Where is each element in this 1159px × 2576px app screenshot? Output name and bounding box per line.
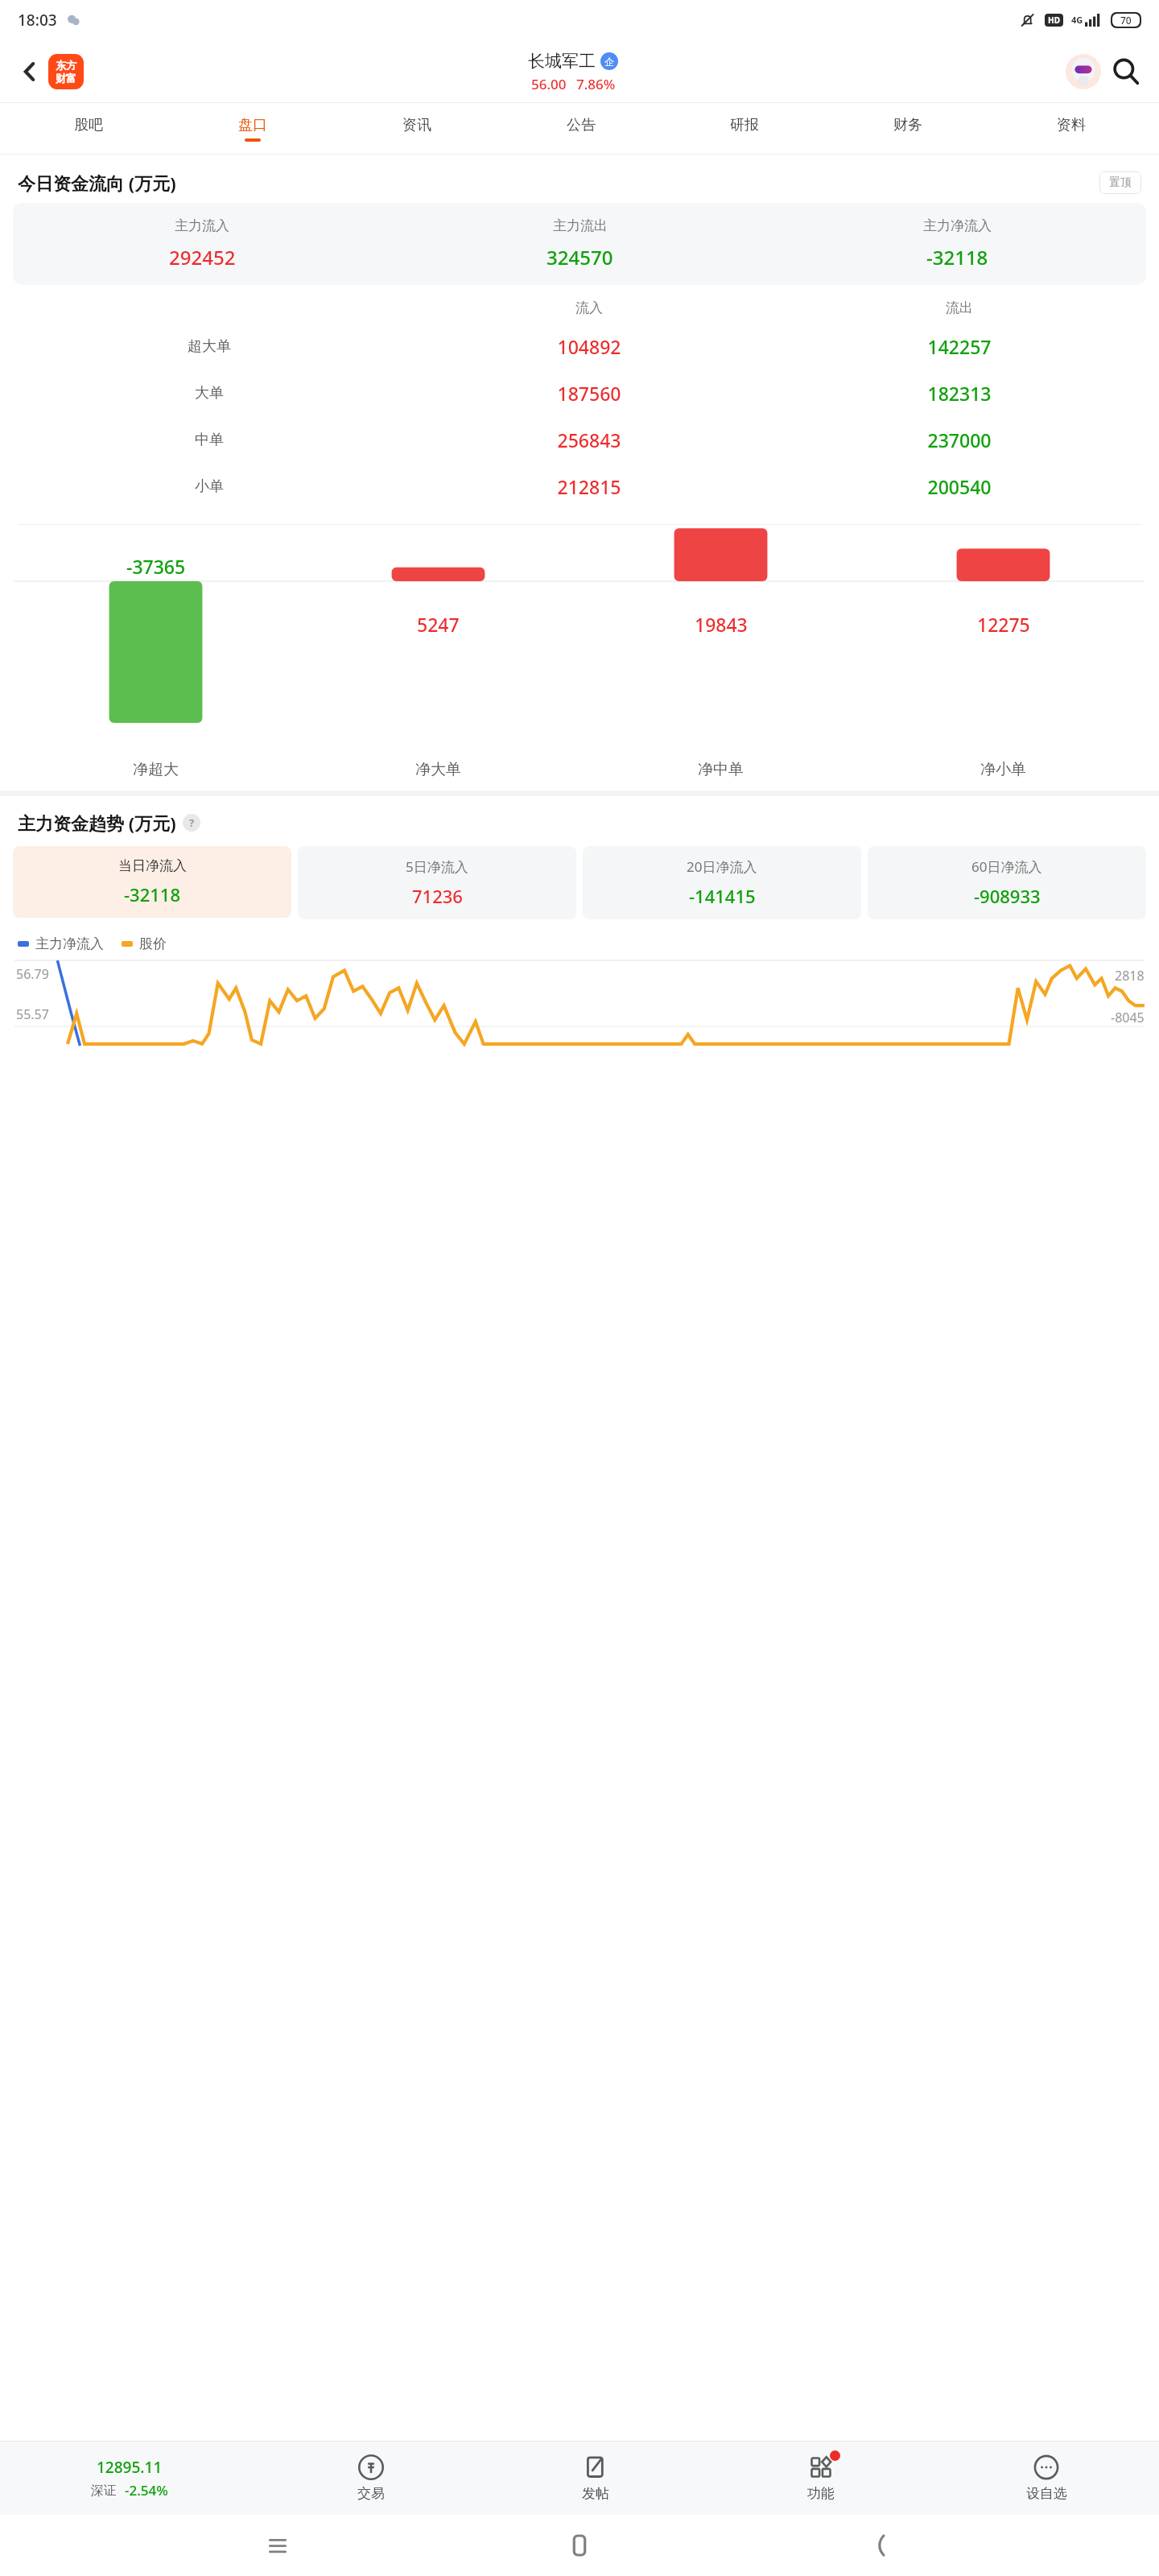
staticText: -32118 — [926, 244, 988, 270]
staticText: 超大单 — [14, 337, 404, 356]
staticText: 182313 — [774, 381, 1145, 406]
staticText: 2818 — [1115, 967, 1145, 985]
button[interactable]: 东方财富 — [48, 54, 84, 89]
staticText: 56.00 — [531, 75, 567, 93]
staticText: -141415 — [689, 884, 756, 908]
staticText: 7.86% — [576, 75, 616, 93]
staticText: 256843 — [404, 427, 774, 452]
button[interactable]: 大单 — [14, 369, 1145, 416]
staticText: 股价 — [139, 935, 167, 952]
staticText: 主力流出 — [553, 217, 608, 234]
staticText: 功能 — [807, 2485, 835, 2502]
staticText: 设自选 — [1026, 2485, 1067, 2502]
staticText: 流入 — [404, 299, 774, 316]
staticText: HD — [1048, 14, 1060, 26]
button[interactable]: Recents — [254, 2521, 302, 2570]
button[interactable]: 交易 — [258, 2441, 483, 2515]
staticText: 主力流入 — [175, 217, 229, 234]
staticText: 60日净流入 — [971, 857, 1042, 876]
staticText: 财富 — [56, 72, 76, 85]
button[interactable]: 主力流入 — [13, 203, 1146, 285]
button[interactable]: 发帖 — [483, 2441, 708, 2515]
staticText: 56.79 — [16, 965, 49, 983]
staticText: 主力资金趋势 (万元) — [18, 811, 176, 835]
button[interactable]: 资讯 — [335, 103, 499, 155]
button[interactable]: Home — [555, 2521, 604, 2570]
button[interactable]: Search — [1104, 50, 1148, 93]
staticText: 大单 — [14, 384, 404, 402]
staticText: 发帖 — [582, 2485, 609, 2502]
staticText: 资讯 — [402, 116, 431, 134]
staticText: 142257 — [774, 334, 1145, 359]
button[interactable]: 公告 — [499, 103, 662, 155]
staticText: 104892 — [404, 334, 774, 359]
staticText: 净超大 — [133, 760, 179, 779]
staticText: 流出 — [774, 299, 1145, 316]
button[interactable]: 当日净流入 — [13, 846, 291, 918]
button[interactable]: 中单 — [14, 416, 1145, 463]
staticText: 交易 — [357, 2485, 385, 2502]
staticText: 今日资金流向 (万元) — [18, 171, 176, 195]
button[interactable]: 超大单 — [14, 323, 1145, 369]
button[interactable]: 60日净流入 — [868, 846, 1146, 919]
staticText: -908933 — [974, 884, 1041, 908]
staticText: 长城军工 — [528, 51, 596, 72]
button[interactable]: 功能 — [708, 2441, 934, 2515]
staticText: 200540 — [774, 474, 1145, 499]
staticText: 研报 — [730, 116, 759, 134]
button[interactable]: 设自选 — [934, 2441, 1159, 2515]
staticText: -37365 — [126, 554, 186, 579]
staticText: -8045 — [1111, 1009, 1145, 1026]
staticText: 股吧 — [74, 116, 103, 134]
staticText: 12275 — [977, 612, 1030, 637]
button[interactable]: 小单 — [14, 463, 1145, 510]
staticText: 主力净流入 — [35, 935, 104, 952]
button[interactable]: 盘口 — [171, 103, 335, 155]
staticText: 212815 — [404, 474, 774, 499]
staticText: 187560 — [404, 381, 774, 406]
staticText: 71236 — [412, 884, 463, 908]
staticText: 当日净流入 — [118, 857, 187, 874]
staticText: -32118 — [124, 882, 180, 906]
button[interactable]: 12895.11 — [0, 2441, 258, 2515]
button[interactable]: 5日净流入 — [298, 846, 576, 919]
staticText: 12895.11 — [97, 2457, 163, 2478]
button[interactable]: 研报 — [662, 103, 826, 155]
button[interactable]: Back — [857, 2521, 905, 2570]
staticText: 55.57 — [16, 1005, 49, 1023]
staticText: 5247 — [417, 612, 460, 637]
staticText: 净中单 — [698, 760, 744, 779]
staticText: 小单 — [14, 477, 404, 496]
staticText: 盘口 — [238, 116, 267, 134]
button[interactable]: Back — [11, 53, 48, 90]
button[interactable]: Help — [183, 814, 200, 832]
staticText: 资料 — [1057, 116, 1086, 134]
staticText: 净大单 — [415, 760, 461, 779]
staticText: 292452 — [169, 244, 236, 270]
staticText: 4G — [1071, 14, 1083, 26]
button[interactable]: 财务 — [826, 103, 989, 155]
staticText: ? — [189, 815, 195, 830]
button[interactable]: 股吧 — [6, 103, 171, 155]
staticText: 18:03 — [18, 10, 57, 31]
staticText: -2.54% — [125, 2481, 168, 2500]
staticText: 中单 — [14, 431, 404, 449]
staticText: 主力净流入 — [923, 217, 992, 234]
button[interactable]: 置顶 — [1099, 171, 1141, 194]
staticText: 净小单 — [980, 760, 1026, 779]
staticText: 财务 — [893, 116, 922, 134]
staticText: 置顶 — [1109, 175, 1132, 190]
staticText: 19843 — [695, 612, 748, 637]
button[interactable]: 20日净流入 — [583, 846, 861, 919]
staticText: 20日净流入 — [687, 857, 757, 876]
staticText: 东方 — [56, 59, 76, 72]
staticText: 深证 — [91, 2483, 117, 2499]
staticText: 5日净流入 — [406, 857, 468, 876]
button[interactable]: AI assistant — [1062, 51, 1104, 93]
staticText: 324570 — [547, 244, 613, 270]
staticText: 公告 — [567, 116, 596, 134]
staticText: 企 — [604, 56, 614, 68]
button[interactable]: 资料 — [989, 103, 1153, 155]
staticText: 237000 — [774, 427, 1145, 452]
staticText: 70 — [1120, 14, 1132, 27]
